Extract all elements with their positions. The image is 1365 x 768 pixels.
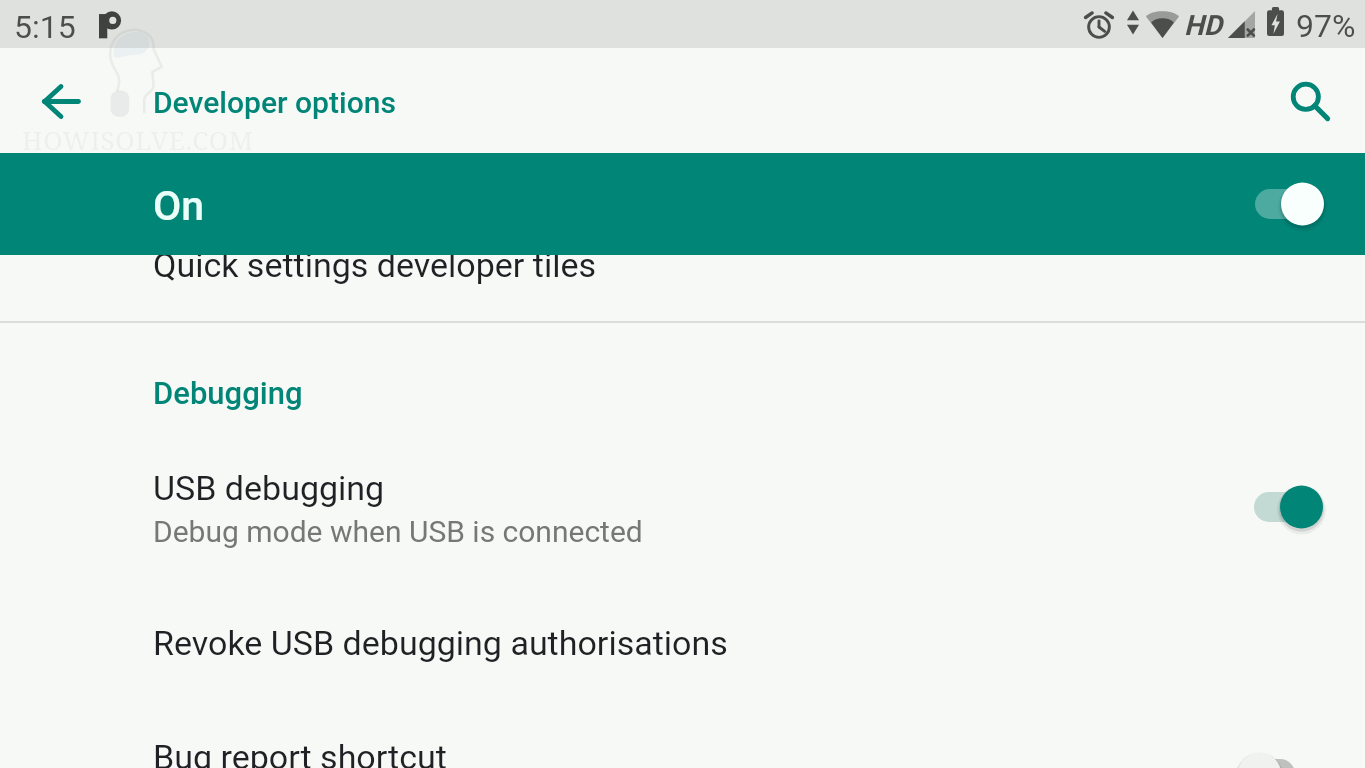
staticText: USB debugging [153,468,385,508]
button[interactable]: Navigate up [22,62,100,140]
button[interactable]: Search [1271,62,1349,140]
staticText: Debug mode when USB is connected [153,514,643,549]
staticText: 5:15 [14,8,76,46]
staticText: On [153,182,205,230]
staticText: HOWISOLVE.COM [22,122,254,157]
button[interactable]: Revoke USB debugging authorisations [0,600,1365,707]
button[interactable]: USB debugging [0,452,1365,570]
staticText: HD [1184,9,1223,42]
staticText: Revoke USB debugging authorisations [153,623,728,663]
staticText: Debugging [153,375,303,411]
button[interactable]: Quick settings developer tiles [0,214,1365,321]
staticText: Developer options [153,85,396,120]
staticText: 97% [1296,7,1356,45]
staticText: Quick settings developer tiles [153,245,597,285]
staticText: Bug report shortcut [153,737,447,768]
button[interactable]: Bug report shortcut [0,714,1365,768]
button[interactable]: On [0,153,1365,255]
